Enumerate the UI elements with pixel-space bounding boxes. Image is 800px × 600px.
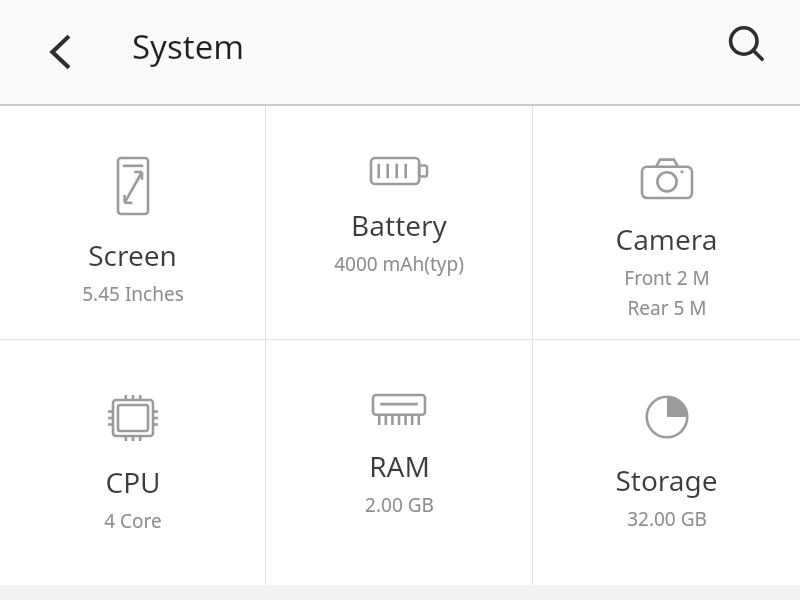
button[interactable]: CPU <box>0 340 265 585</box>
staticText: 2.00 GB <box>365 492 434 518</box>
button[interactable]: Back <box>30 22 92 82</box>
staticText: Battery <box>351 206 447 244</box>
staticText: 4000 mAh(typ) <box>334 251 464 277</box>
button[interactable]: RAM <box>266 340 532 585</box>
staticText: System <box>132 24 245 69</box>
staticText: Rear 5 M <box>627 295 707 321</box>
button[interactable]: Storage <box>533 340 800 585</box>
staticText: Camera <box>615 220 718 258</box>
button[interactable]: Camera <box>533 106 800 339</box>
staticText: Screen <box>88 236 177 274</box>
button[interactable]: Battery <box>266 106 532 339</box>
staticText: 4 Core <box>104 508 162 534</box>
button[interactable]: Screen <box>0 106 265 339</box>
staticText: 5.45 Inches <box>82 281 184 307</box>
staticText: Front 2 M <box>624 265 710 291</box>
button[interactable]: Search <box>716 14 778 76</box>
staticText: Storage <box>615 461 718 499</box>
staticText: RAM <box>369 447 430 485</box>
staticText: CPU <box>105 463 161 501</box>
staticText: 32.00 GB <box>627 506 707 532</box>
